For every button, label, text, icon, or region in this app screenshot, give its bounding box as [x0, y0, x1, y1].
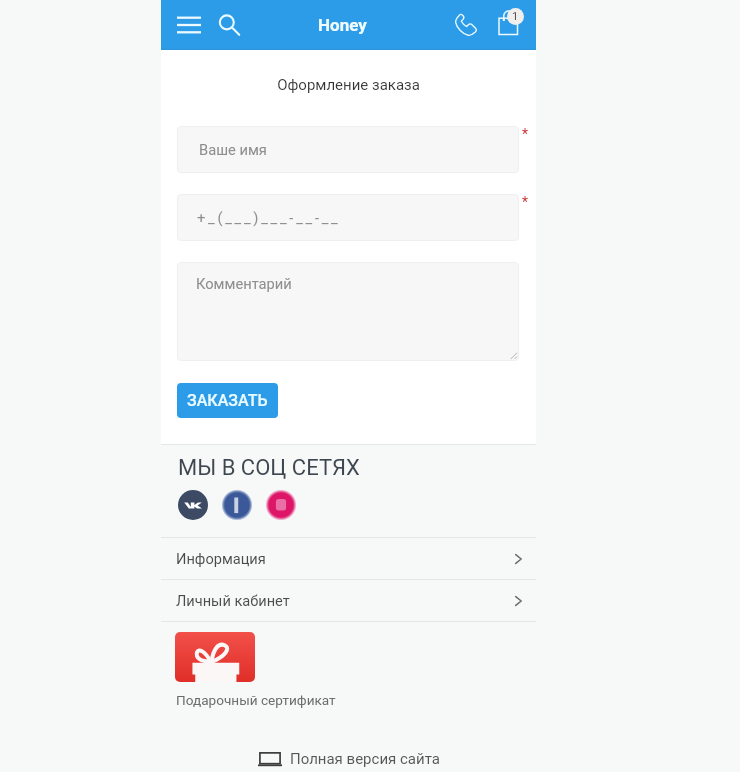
staticText: Honey: [318, 15, 367, 35]
button[interactable]: Gift certificate: [175, 632, 255, 682]
button[interactable]: Facebook: [222, 490, 252, 520]
staticText: +_(___)___-__-__: [197, 209, 341, 226]
button[interactable]: Menu: [169, 5, 209, 45]
staticText: МЫ В СОЦ СЕТЯХ: [178, 455, 360, 481]
button[interactable]: Информация: [161, 538, 536, 579]
staticText: Комментарий: [196, 275, 292, 292]
button[interactable]: VK: [178, 490, 208, 520]
staticText: Подарочный сертификат: [176, 692, 336, 708]
button[interactable]: ЗАКАЗАТЬ: [177, 383, 278, 418]
button[interactable]: Call: [442, 2, 488, 48]
staticText: Ваше имя: [199, 141, 267, 158]
staticText: 1: [512, 10, 519, 23]
button[interactable]: +_(___)___-__-__: [177, 194, 519, 241]
button[interactable]: Личный кабинет: [161, 580, 536, 621]
button[interactable]: Cart: [488, 2, 534, 48]
staticText: Личный кабинет: [176, 592, 290, 609]
staticText: Информация: [176, 550, 266, 567]
staticText: Полная версия сайта: [290, 750, 440, 768]
staticText: Оформление заказа: [161, 76, 536, 94]
button[interactable]: Instagram: [266, 490, 296, 520]
staticText: ЗАКАЗАТЬ: [187, 391, 268, 410]
staticText: *: [522, 126, 529, 142]
button[interactable]: Search: [209, 5, 249, 45]
button[interactable]: Полная версия сайта: [258, 750, 440, 768]
staticText: *: [522, 194, 529, 210]
button[interactable]: Комментарий: [177, 262, 519, 361]
button[interactable]: Ваше имя: [177, 126, 519, 173]
